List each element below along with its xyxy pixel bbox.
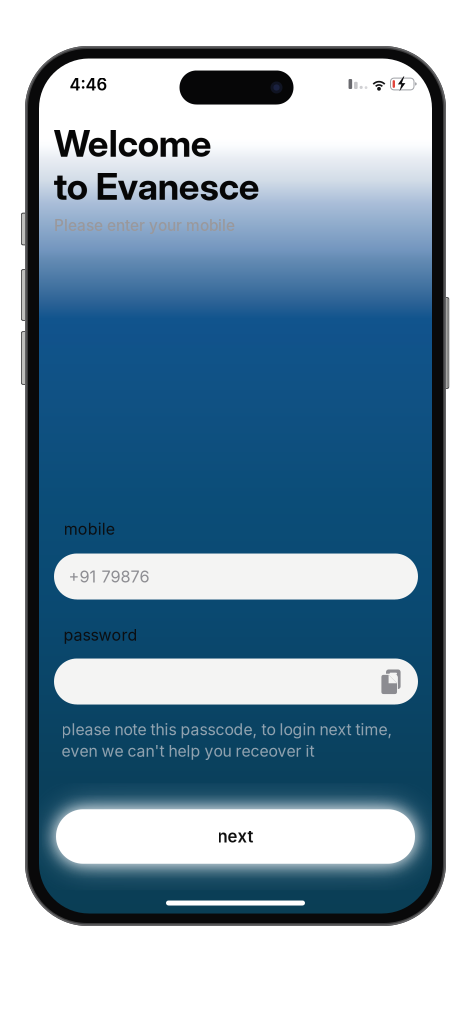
staticText: to Evanesce bbox=[54, 164, 260, 209]
staticText: mobile bbox=[64, 519, 115, 539]
staticText: password bbox=[63, 625, 137, 645]
staticText: please note this passcode, to login next… bbox=[62, 720, 393, 739]
staticText: Welcome bbox=[54, 121, 212, 166]
button[interactable]: next bbox=[56, 809, 415, 864]
staticText: even we can't help you receover it bbox=[62, 741, 315, 760]
staticText: Please enter your mobile bbox=[54, 216, 235, 235]
staticText: 4:46 bbox=[70, 74, 108, 95]
staticText: next bbox=[217, 826, 253, 847]
staticText: +91 79876 bbox=[68, 567, 149, 586]
